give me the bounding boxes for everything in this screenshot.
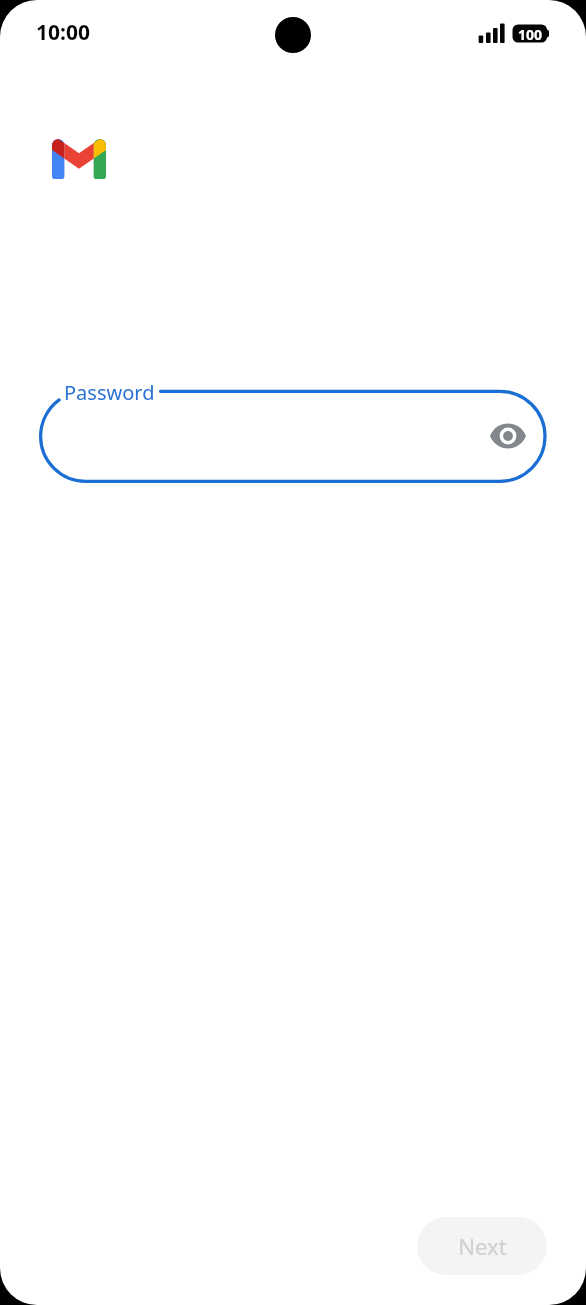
button[interactable]: Next bbox=[417, 1217, 547, 1275]
staticText: Password bbox=[64, 379, 155, 406]
staticText: 100 bbox=[518, 25, 543, 43]
button[interactable]: Show password bbox=[480, 408, 536, 464]
staticText: 10:00 bbox=[36, 18, 90, 47]
staticText: Next bbox=[458, 1231, 507, 1261]
